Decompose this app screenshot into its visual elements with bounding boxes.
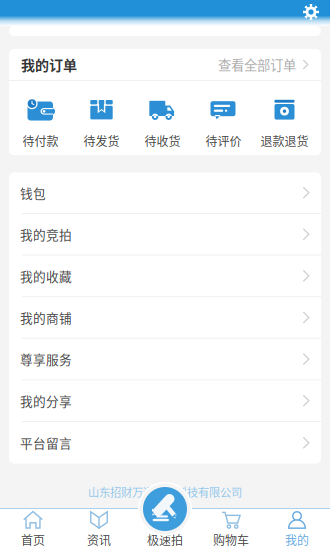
- staticText: 首页: [21, 531, 45, 548]
- button[interactable]: 资讯: [66, 509, 132, 550]
- staticText: 待发货: [83, 132, 119, 149]
- button[interactable]: 购物车: [198, 509, 264, 550]
- button[interactable]: 我的收藏: [9, 256, 321, 297]
- staticText: 待评价: [205, 132, 241, 149]
- button[interactable]: 待收货: [132, 98, 193, 149]
- button[interactable]: 待发货: [71, 98, 132, 149]
- staticText: 我的分享: [20, 391, 72, 410]
- button[interactable]: 极速拍: [138, 482, 192, 536]
- button[interactable]: 我的订单: [9, 49, 321, 80]
- staticText: 资讯: [87, 531, 111, 548]
- button[interactable]: 退款退货: [254, 98, 315, 149]
- button[interactable]: 我的分享: [9, 380, 321, 422]
- staticText: 待付款: [22, 132, 58, 149]
- staticText: 我的商铺: [20, 308, 72, 327]
- button[interactable]: 待付款: [10, 98, 71, 149]
- button[interactable]: 尊享服务: [9, 339, 321, 380]
- button[interactable]: 钱包: [9, 172, 321, 214]
- button[interactable]: Settings: [298, 1, 324, 23]
- staticText: 退款退货: [260, 132, 308, 149]
- staticText: 我的收藏: [20, 267, 72, 285]
- staticText: 尊享服务: [20, 350, 72, 368]
- button[interactable]: 待评价: [193, 98, 254, 149]
- staticText: 极速拍: [147, 531, 183, 548]
- staticText: 购物车: [213, 531, 249, 548]
- staticText: 查看全部订单: [218, 55, 296, 74]
- button[interactable]: 我的竞拍: [9, 214, 321, 256]
- button[interactable]: 我的商铺: [9, 297, 321, 339]
- button[interactable]: 我的: [264, 509, 330, 550]
- staticText: 平台留言: [20, 434, 72, 452]
- button[interactable]: 首页: [0, 509, 66, 550]
- button[interactable]: 平台留言: [9, 422, 321, 464]
- staticText: 我的: [285, 531, 309, 548]
- button[interactable]: 极速拍: [132, 509, 198, 550]
- staticText: 我的竞拍: [20, 225, 72, 243]
- staticText: 钱包: [20, 183, 46, 202]
- staticText: 山东招财万通信息科技有限公司: [88, 484, 242, 500]
- staticText: 我的订单: [21, 54, 77, 75]
- staticText: 待收货: [144, 132, 180, 149]
